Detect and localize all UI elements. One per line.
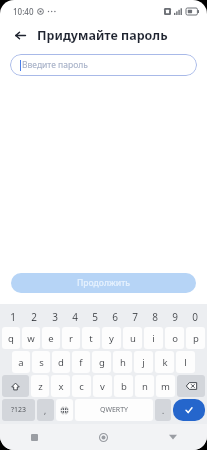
staticText: z	[38, 380, 43, 393]
staticText: t	[89, 332, 93, 345]
button[interactable]: Change language	[56, 399, 73, 421]
staticText: k	[162, 356, 168, 369]
button[interactable]: 1	[2, 307, 23, 326]
staticText: d	[58, 356, 64, 369]
staticText: 9	[172, 310, 178, 324]
button[interactable]: Back	[11, 26, 29, 44]
button[interactable]: 8	[145, 307, 165, 326]
staticText: c	[79, 380, 84, 393]
button[interactable]: n	[135, 375, 154, 397]
button[interactable]: j	[134, 351, 153, 373]
staticText: x	[58, 380, 64, 393]
staticText: 4	[72, 310, 78, 324]
button[interactable]: r	[62, 327, 80, 349]
button[interactable]: f	[72, 351, 90, 373]
staticText: u	[130, 332, 136, 345]
staticText: v	[100, 380, 105, 393]
button[interactable]: s	[32, 351, 50, 373]
staticText: n	[142, 380, 148, 393]
staticText: b	[121, 380, 127, 393]
button[interactable]: c	[72, 375, 91, 397]
button[interactable]: 6	[105, 307, 125, 326]
staticText: e	[48, 332, 54, 345]
button[interactable]: l	[176, 351, 195, 373]
button[interactable]: 2	[23, 307, 44, 326]
staticText: Придумайте пароль	[37, 27, 168, 44]
button[interactable]: e	[42, 327, 60, 349]
button[interactable]: 5	[85, 307, 105, 326]
staticText: r	[69, 332, 73, 345]
staticText: l	[184, 356, 187, 369]
button[interactable]: .	[155, 399, 171, 421]
staticText: 7	[132, 310, 138, 324]
button[interactable]: Backspace	[177, 375, 205, 397]
button[interactable]: 4	[65, 307, 85, 326]
staticText: s	[39, 356, 44, 369]
staticText: Продолжить	[77, 277, 130, 289]
button[interactable]: i	[144, 327, 163, 349]
button[interactable]: Back	[138, 424, 207, 450]
staticText: 8	[152, 310, 158, 324]
button[interactable]: Продолжить	[11, 273, 196, 293]
button[interactable]: o	[165, 327, 184, 349]
button[interactable]: 0	[185, 307, 205, 326]
staticText: a	[18, 356, 24, 369]
button[interactable]: QWERTY	[75, 399, 153, 421]
button[interactable]: v	[93, 375, 112, 397]
staticText: 0	[192, 310, 198, 324]
staticText: f	[79, 356, 83, 369]
button[interactable]: Done	[173, 399, 205, 421]
staticText: h	[120, 356, 126, 369]
button[interactable]: g	[92, 351, 111, 373]
button[interactable]: Recents	[0, 424, 69, 450]
staticText: ?123	[11, 405, 27, 415]
staticText: 2	[31, 310, 37, 324]
staticText: i	[152, 332, 155, 345]
button[interactable]: w	[22, 327, 40, 349]
button[interactable]: k	[155, 351, 174, 373]
staticText: ,	[44, 405, 47, 416]
button[interactable]: ?123	[2, 399, 35, 421]
staticText: y	[109, 332, 114, 345]
button[interactable]: t	[82, 327, 100, 349]
staticText: QWERTY	[100, 405, 129, 415]
button[interactable]: Home	[69, 424, 138, 450]
button[interactable]: m	[156, 375, 175, 397]
staticText: w	[27, 332, 35, 345]
button[interactable]: h	[113, 351, 132, 373]
button[interactable]: b	[114, 375, 133, 397]
button[interactable]: Введите пароль	[10, 54, 197, 76]
button[interactable]: u	[123, 327, 142, 349]
button[interactable]: ,	[37, 399, 54, 421]
button[interactable]: d	[52, 351, 70, 373]
staticText: j	[142, 356, 145, 369]
button[interactable]: y	[102, 327, 121, 349]
staticText: q	[8, 332, 14, 345]
staticText: 1	[10, 310, 16, 324]
button[interactable]: 7	[125, 307, 145, 326]
staticText: .	[162, 405, 165, 416]
staticText: 5	[92, 310, 98, 324]
button[interactable]: p	[186, 327, 205, 349]
staticText: 10:40	[13, 6, 34, 17]
button[interactable]: q	[2, 327, 20, 349]
staticText: g	[99, 356, 105, 369]
staticText: Введите пароль	[22, 59, 88, 71]
staticText: o	[172, 332, 178, 345]
button[interactable]: a	[12, 351, 30, 373]
button[interactable]: 3	[44, 307, 65, 326]
staticText: p	[193, 332, 199, 345]
button[interactable]: x	[51, 375, 70, 397]
button[interactable]: z	[31, 375, 49, 397]
button[interactable]: 9	[165, 307, 185, 326]
staticText: 6	[112, 310, 118, 324]
button[interactable]: Shift	[2, 375, 29, 397]
staticText: 3	[52, 310, 58, 324]
staticText: m	[161, 380, 170, 393]
